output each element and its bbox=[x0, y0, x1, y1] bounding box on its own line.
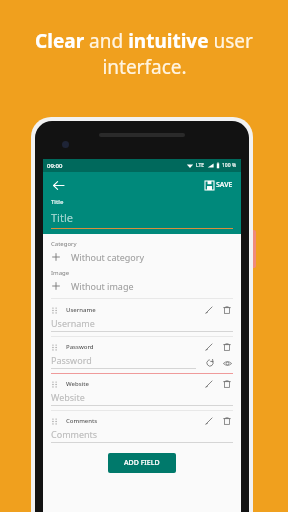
button[interactable]: Without category bbox=[51, 251, 233, 263]
button[interactable]: Delete Username bbox=[221, 304, 233, 316]
button[interactable]: Username bbox=[51, 303, 233, 336]
staticText: Website bbox=[66, 380, 89, 388]
staticText: Category bbox=[51, 240, 77, 248]
staticText: Comments bbox=[51, 428, 98, 440]
button[interactable]: Show password bbox=[221, 357, 233, 369]
button[interactable]: Comments bbox=[51, 414, 233, 447]
button[interactable]: SAVE bbox=[203, 178, 235, 192]
staticText: 100 % bbox=[222, 162, 237, 169]
button[interactable]: Delete Comments bbox=[221, 415, 233, 427]
staticText: Password bbox=[66, 343, 94, 351]
button[interactable]: Password bbox=[51, 340, 233, 373]
staticText: Comments bbox=[66, 417, 98, 425]
staticText: ADD FIELD bbox=[124, 458, 160, 468]
staticText: LTE bbox=[196, 162, 205, 169]
staticText: interface. bbox=[102, 54, 187, 80]
button[interactable]: Edit Password bbox=[203, 341, 215, 353]
staticText: Website bbox=[51, 391, 85, 403]
button[interactable]: Edit Website bbox=[203, 378, 215, 390]
staticText: Username bbox=[66, 306, 96, 314]
button[interactable]: Generate password bbox=[204, 357, 216, 369]
staticText: Password bbox=[51, 354, 92, 366]
staticText: Without category bbox=[71, 251, 145, 263]
staticText: Title bbox=[51, 210, 73, 225]
staticText: SAVE bbox=[216, 180, 233, 190]
staticText: Title bbox=[51, 198, 64, 206]
button[interactable]: Edit Comments bbox=[203, 415, 215, 427]
button[interactable]: Delete Website bbox=[221, 378, 233, 390]
button[interactable]: Delete Password bbox=[221, 341, 233, 353]
button[interactable]: Website bbox=[51, 377, 233, 410]
staticText: Clear and intuitive user bbox=[35, 28, 253, 54]
button[interactable]: ADD FIELD bbox=[108, 453, 176, 473]
staticText: Username bbox=[51, 317, 95, 329]
button[interactable]: Back bbox=[49, 176, 67, 194]
staticText: 09:00 bbox=[47, 162, 63, 170]
button[interactable]: Edit Username bbox=[203, 304, 215, 316]
staticText: Image bbox=[51, 269, 70, 277]
staticText: Without image bbox=[71, 280, 134, 292]
button[interactable]: Without image bbox=[51, 280, 233, 292]
